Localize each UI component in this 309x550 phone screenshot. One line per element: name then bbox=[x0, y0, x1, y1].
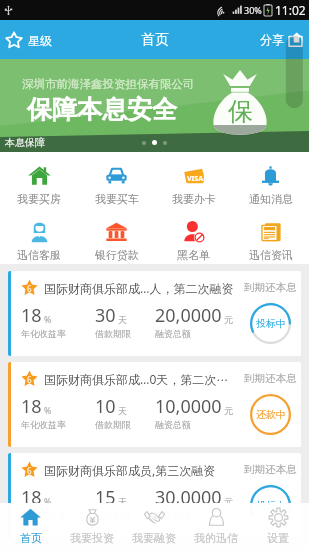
staticText: 还款中 bbox=[256, 408, 286, 421]
staticText: 通知消息 bbox=[249, 192, 293, 206]
staticText: 18 bbox=[21, 394, 42, 419]
staticText: 10 bbox=[95, 394, 116, 419]
staticText: 星级 bbox=[28, 33, 52, 48]
button[interactable]: 设置 bbox=[247, 503, 309, 550]
staticText: 深圳市前海泽鑫投资担保有限公司 bbox=[22, 77, 195, 91]
button[interactable]: 我的迅信 bbox=[185, 503, 247, 550]
button[interactable]: 还款中 bbox=[250, 394, 291, 435]
staticText: 元 bbox=[224, 405, 233, 416]
staticText: % bbox=[44, 313, 52, 325]
staticText: 18 bbox=[21, 485, 42, 510]
staticText: 10,0000 bbox=[155, 394, 222, 419]
staticText: % bbox=[44, 495, 52, 507]
staticText: 6 bbox=[27, 283, 32, 294]
staticText: 20,0000 bbox=[155, 303, 222, 328]
staticText: 分享 bbox=[260, 32, 284, 47]
staticText: 天 bbox=[118, 314, 127, 325]
button[interactable]: 通知消息 bbox=[232, 152, 309, 208]
button[interactable]: 首页 bbox=[0, 503, 61, 550]
staticText: 黑名单 bbox=[177, 248, 210, 262]
staticText: 迅信客服 bbox=[17, 248, 61, 262]
staticText: 国际财商俱乐部成…人，第二次融资 bbox=[44, 280, 240, 296]
staticText: 18 bbox=[21, 303, 42, 328]
button[interactable]: 星级 bbox=[0, 25, 60, 55]
staticText: 借款期限 bbox=[95, 510, 131, 521]
staticText: 国际财商俱乐部成员,第三次融资 bbox=[44, 462, 240, 478]
staticText: % bbox=[44, 404, 52, 416]
staticText: 年化收益率 bbox=[21, 328, 66, 339]
staticText: 首页 bbox=[141, 31, 169, 49]
staticText: 年化收益率 bbox=[21, 510, 66, 521]
staticText: 本息保障 bbox=[5, 136, 45, 149]
staticText: 借款期限 bbox=[95, 328, 131, 339]
button[interactable]: 迅信资讯 bbox=[232, 208, 309, 264]
staticText: 投标中 bbox=[256, 499, 286, 512]
staticText: 11:02 bbox=[275, 2, 306, 18]
button[interactable]: 迅信客服 bbox=[0, 208, 78, 264]
staticText: 年化收益率 bbox=[21, 419, 66, 430]
button[interactable]: 我要买房 bbox=[0, 152, 78, 208]
staticText: VISA bbox=[187, 174, 203, 184]
staticText: 融资总额 bbox=[155, 419, 191, 430]
staticText: 30,0000 bbox=[155, 485, 222, 510]
staticText: 我要投资 bbox=[70, 531, 114, 545]
staticText: 首页 bbox=[20, 531, 42, 545]
button[interactable]: 分享 bbox=[252, 26, 309, 53]
staticText: 元 bbox=[224, 314, 233, 325]
staticText: 融资总额 bbox=[155, 510, 191, 521]
staticText: 设置 bbox=[267, 531, 289, 545]
button[interactable]: 投标中 bbox=[250, 485, 291, 526]
staticText: 我的迅信 bbox=[194, 531, 238, 545]
staticText: 元 bbox=[224, 496, 233, 507]
staticText: 保障本息安全 bbox=[27, 94, 177, 125]
staticText: 到期还本息 bbox=[244, 463, 297, 476]
staticText: 融资总额 bbox=[155, 328, 191, 339]
button[interactable]: 投标中 bbox=[250, 303, 291, 344]
staticText: 借款期限 bbox=[95, 419, 131, 430]
button[interactable]: 6 bbox=[8, 362, 301, 447]
staticText: 银行贷款 bbox=[95, 248, 139, 262]
staticText: 我要买车 bbox=[95, 192, 139, 206]
staticText: 天 bbox=[118, 405, 127, 416]
staticText: 到期还本息 bbox=[244, 372, 297, 385]
staticText: 30% bbox=[244, 4, 262, 16]
staticText: 国际财商俱乐部成…0天，第二次融资 bbox=[44, 371, 240, 387]
staticText: 迅信资讯 bbox=[249, 248, 293, 262]
staticText: 投标中 bbox=[256, 317, 286, 330]
staticText: 15 bbox=[95, 485, 116, 510]
button[interactable]: 6 bbox=[8, 271, 301, 356]
staticText: 6 bbox=[27, 374, 32, 385]
staticText: 我要买房 bbox=[17, 192, 61, 206]
staticText: 到期还本息 bbox=[244, 281, 297, 294]
staticText: 30 bbox=[95, 303, 116, 328]
button[interactable]: 我要买车 bbox=[78, 152, 155, 208]
staticText: 我要融资 bbox=[132, 531, 176, 545]
staticText: 我要办卡 bbox=[172, 192, 216, 206]
button[interactable]: 我要投资 bbox=[61, 503, 123, 550]
button[interactable]: 黑名单 bbox=[155, 208, 232, 264]
button[interactable]: 银行贷款 bbox=[78, 208, 155, 264]
staticText: 6 bbox=[27, 465, 32, 476]
staticText: 保 bbox=[228, 96, 253, 127]
button[interactable]: VISA bbox=[155, 152, 232, 208]
button[interactable]: 6 bbox=[8, 453, 301, 538]
staticText: 天 bbox=[118, 496, 127, 507]
button[interactable]: 我要融资 bbox=[123, 503, 185, 550]
